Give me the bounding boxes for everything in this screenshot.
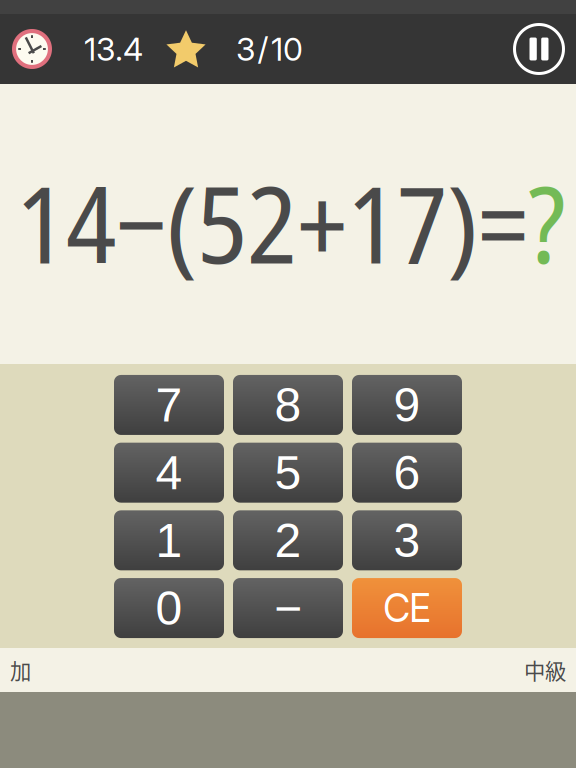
staticText: 5: [274, 446, 301, 499]
staticText: ?: [528, 149, 566, 295]
staticText: CE: [383, 585, 430, 631]
staticText: 9: [393, 378, 420, 432]
staticText: 6: [393, 446, 420, 499]
staticText: 1: [155, 513, 182, 567]
staticText: 14−(52+17)=: [16, 149, 528, 295]
button[interactable]: 0: [114, 578, 224, 638]
staticText: 7: [155, 378, 182, 432]
staticText: /: [257, 30, 268, 68]
button[interactable]: 9: [352, 375, 462, 435]
staticText: 3: [236, 30, 255, 68]
button[interactable]: 6: [352, 443, 462, 503]
button[interactable]: 2: [233, 510, 343, 570]
staticText: 4: [155, 446, 182, 499]
staticText: 3: [393, 513, 420, 567]
button[interactable]: Pause: [513, 23, 565, 75]
staticText: 中級: [524, 655, 566, 685]
button[interactable]: 4: [114, 443, 224, 503]
button[interactable]: 5: [233, 443, 343, 503]
button[interactable]: CE: [352, 578, 462, 638]
staticText: 加: [10, 655, 31, 685]
staticText: −: [274, 581, 302, 635]
button[interactable]: 8: [233, 375, 343, 435]
staticText: 2: [274, 513, 301, 567]
staticText: 10: [271, 30, 303, 68]
staticText: 13.4: [84, 30, 143, 68]
button[interactable]: −: [233, 578, 343, 638]
button[interactable]: 1: [114, 510, 224, 570]
button[interactable]: 3: [352, 510, 462, 570]
staticText: 0: [155, 581, 182, 635]
button[interactable]: 7: [114, 375, 224, 435]
staticText: 8: [274, 378, 301, 432]
